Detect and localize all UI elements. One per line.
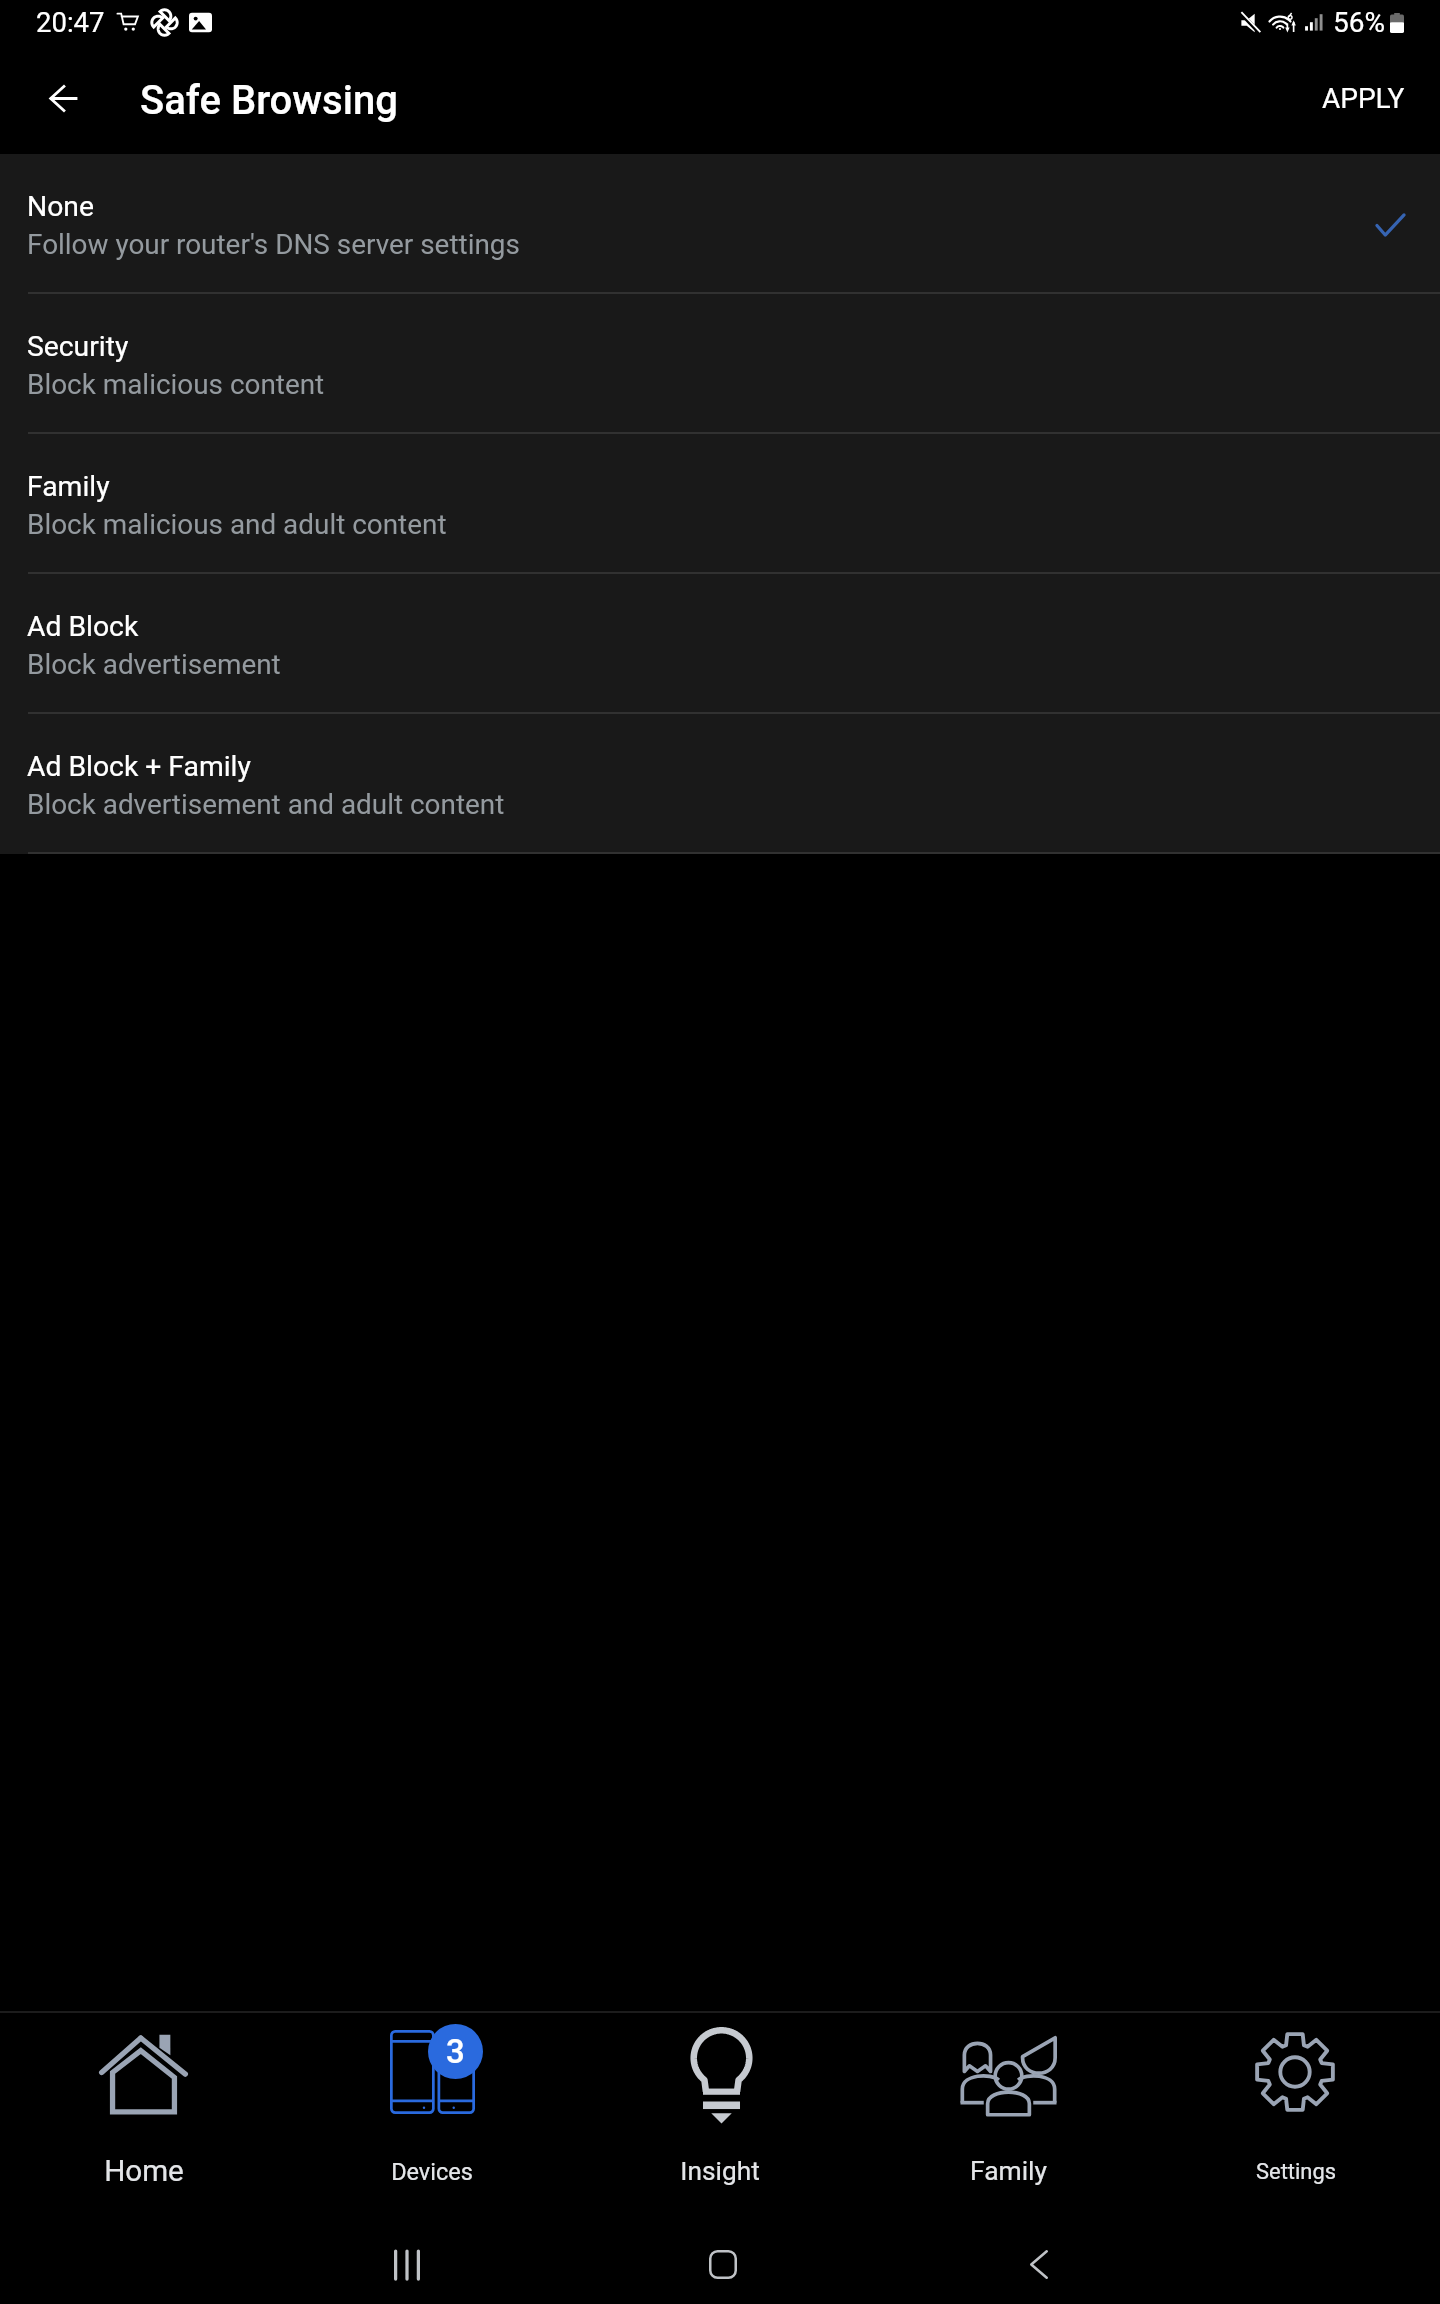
button[interactable]: Insight — [576, 2013, 864, 2200]
button[interactable]: APPLY — [1295, 60, 1432, 137]
staticText: Ad Block — [27, 610, 139, 643]
button[interactable]: Back — [979, 2200, 1099, 2304]
button[interactable]: Recents — [347, 2200, 467, 2304]
staticText: None — [27, 190, 94, 223]
staticText: Block advertisement — [27, 648, 281, 681]
button[interactable]: Security — [0, 294, 1440, 434]
staticText: Security — [27, 330, 129, 363]
staticText: APPLY — [1322, 82, 1405, 115]
button[interactable]: Home — [663, 2200, 783, 2304]
staticText: Home — [104, 2154, 184, 2189]
staticText: Devices — [391, 2158, 473, 2186]
button[interactable]: Family — [0, 434, 1440, 574]
staticText: 3 — [446, 2032, 465, 2071]
staticText: 56% — [1333, 6, 1385, 39]
button[interactable]: 3 — [288, 2013, 576, 2200]
button[interactable]: Home — [0, 2013, 288, 2200]
staticText: Settings — [1256, 2159, 1336, 2185]
button[interactable]: Settings — [1152, 2013, 1440, 2200]
button[interactable]: Family — [864, 2013, 1152, 2200]
button[interactable]: None — [0, 154, 1440, 294]
staticText: Safe Browsing — [140, 77, 398, 124]
staticText: Insight — [680, 2156, 760, 2187]
staticText: Block malicious content — [27, 368, 325, 401]
button[interactable]: Ad Block + Family — [0, 714, 1440, 854]
staticText: Family — [970, 2156, 1047, 2187]
button[interactable]: Back — [23, 58, 103, 138]
button[interactable]: Ad Block — [0, 574, 1440, 714]
staticText: 20:47 — [36, 6, 105, 38]
staticText: Family — [27, 470, 110, 503]
staticText: Block malicious and adult content — [27, 508, 447, 541]
staticText: Block advertisement and adult content — [27, 788, 505, 821]
staticText: Follow your router's DNS server settings — [27, 228, 520, 261]
staticText: Ad Block + Family — [27, 750, 251, 783]
